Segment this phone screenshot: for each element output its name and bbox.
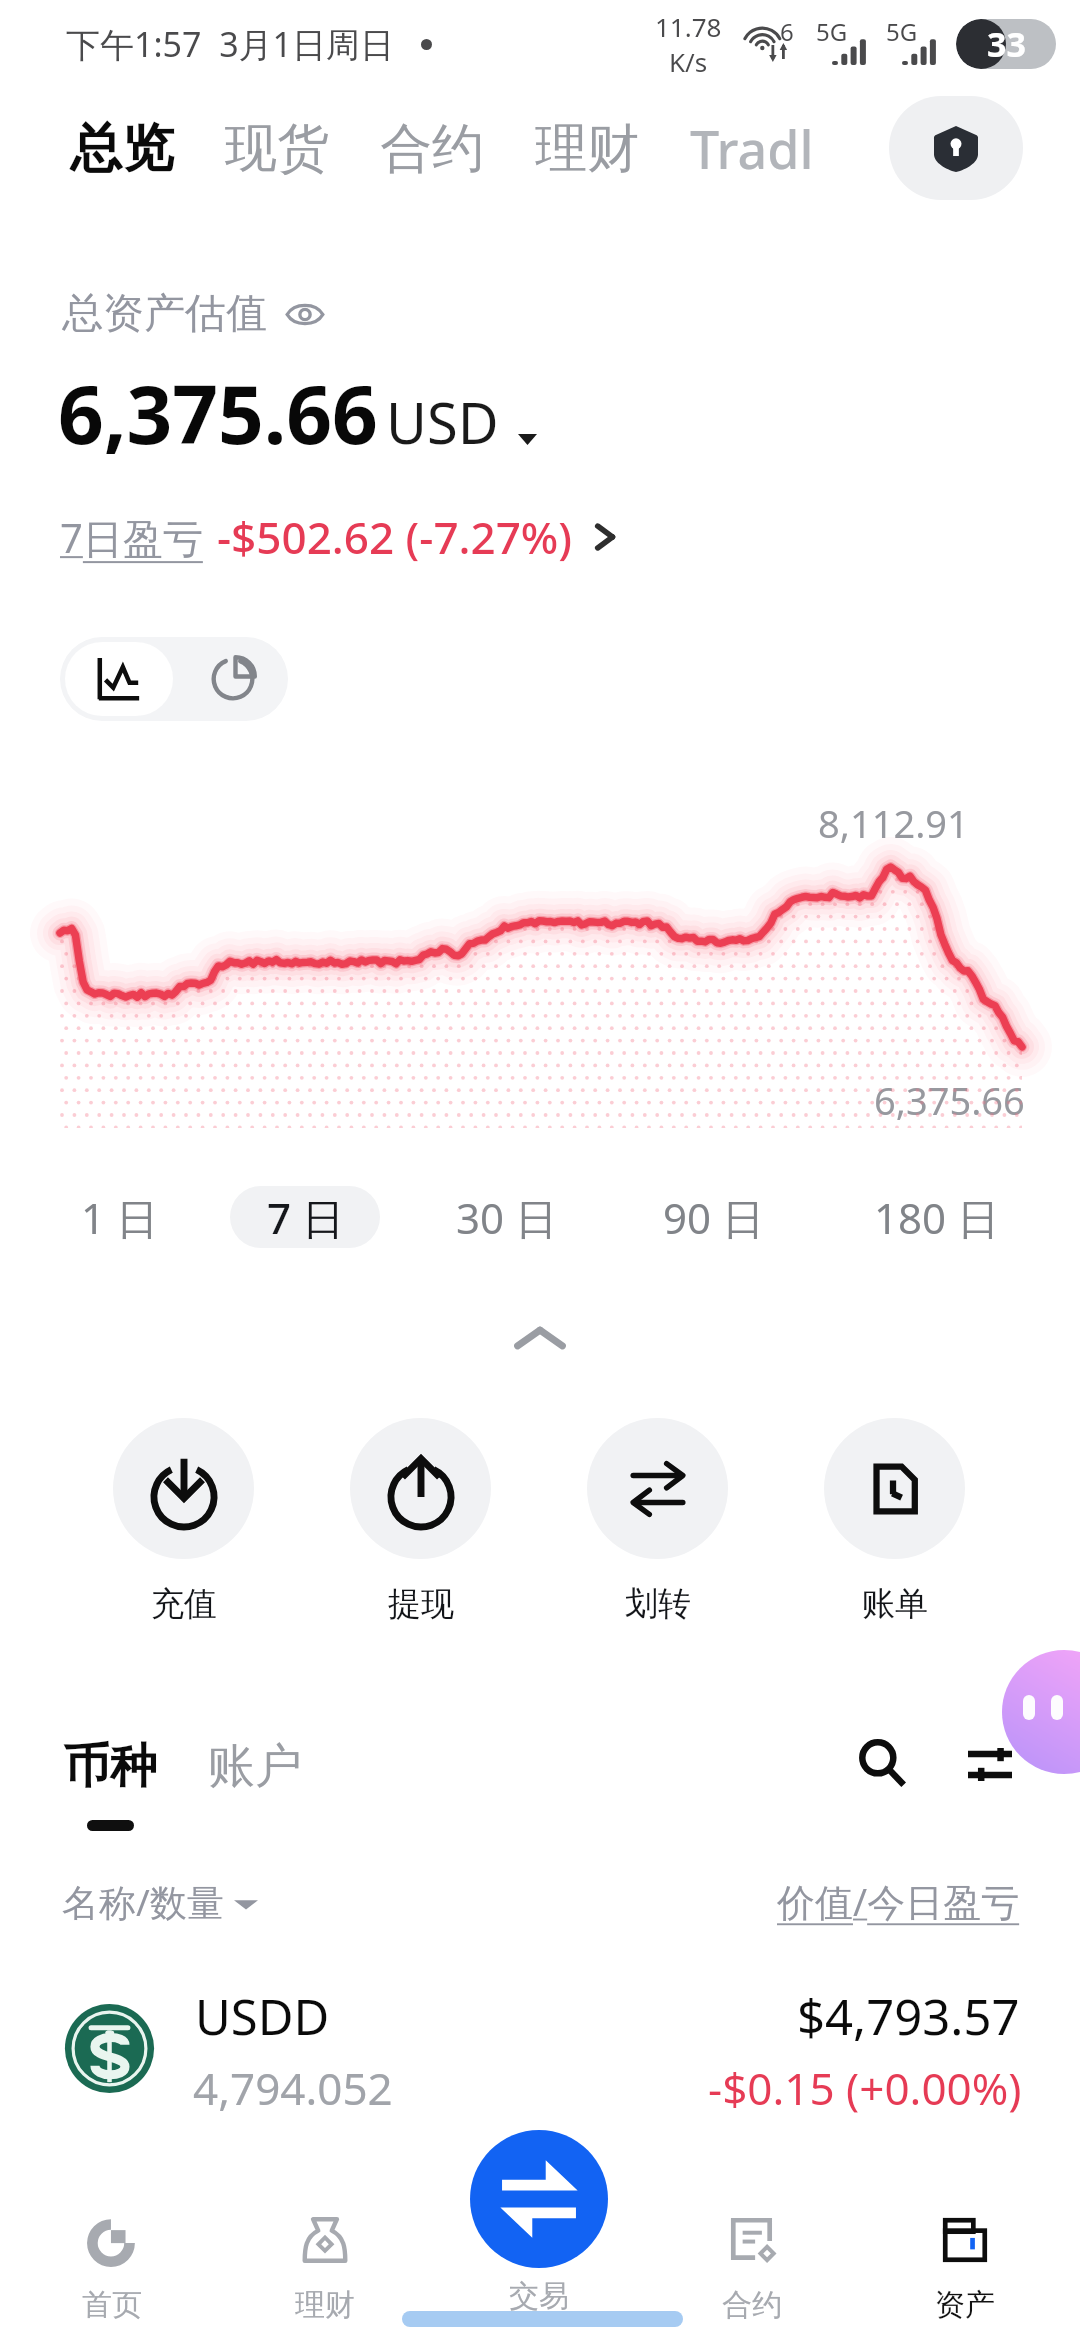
staticText: 名称/数量 [62,1876,224,1927]
staticText: 5G [816,15,848,48]
button[interactable]: 1 日 [44,1186,194,1248]
staticText: 提现 [388,1583,454,1625]
button[interactable]: 现货 [225,116,329,182]
staticText: 1 日 [81,1189,158,1246]
button[interactable]: 理财 [535,116,639,182]
button[interactable]: 合约 [682,2196,822,2340]
button[interactable]: Pie chart [178,637,288,721]
staticText: 总资产估值 [62,288,267,340]
staticText: USD [386,384,499,460]
button[interactable]: 价值/今日盈亏 [777,1875,1020,1927]
button[interactable]: 7 日 [230,1186,380,1248]
staticText: 7日盈亏 [60,510,203,565]
button[interactable]: 总资产估值 [62,288,324,340]
staticText: 首页 [82,2286,142,2324]
button[interactable]: 充值 [113,1418,254,1625]
button[interactable]: Trade [449,2130,629,2325]
button[interactable]: Trade [470,2130,608,2268]
staticText: 11.78 [655,9,722,44]
staticText: 合约 [722,2286,782,2324]
staticText: 90 日 [663,1189,764,1246]
staticText: 6,375.66 [58,358,378,467]
button[interactable]: 90 日 [638,1186,788,1248]
staticText: K/s [669,44,708,79]
staticText: 账单 [862,1583,928,1625]
button[interactable]: Tradl [690,113,814,184]
staticText: 划转 [625,1583,691,1625]
staticText: 充值 [151,1583,217,1625]
staticText: 下午1:57 3月1日周日 [66,21,395,67]
button[interactable]: 账户 [208,1737,302,1796]
button[interactable]: 180 日 [861,1186,1011,1248]
button[interactable]: 名称/数量 [62,1876,258,1927]
staticText: 33 [987,21,1026,67]
button[interactable]: 30 日 [431,1186,581,1248]
button[interactable]: 合约 [380,116,484,182]
button[interactable]: 总览 [70,116,174,182]
button[interactable]: Security [889,96,1023,200]
button[interactable]: 提现 [350,1418,491,1625]
button[interactable]: Collapse [512,1320,568,1356]
staticText: -$0.15 (+0.00%) [708,2058,1022,2118]
button[interactable]: 账单 [824,1418,965,1625]
button[interactable]: 资产 [895,2196,1035,2340]
staticText: 资产 [935,2286,995,2324]
button[interactable]: 7日盈亏 [60,507,619,567]
staticText: 6 [780,15,794,48]
staticText: 7 日 [267,1189,344,1246]
button[interactable]: Filter [958,1737,1022,1791]
button[interactable]: Customer service [1002,1650,1080,1774]
staticText: 币种 [63,1737,157,1796]
button[interactable]: 理财 [255,2196,395,2340]
button[interactable]: USDD [0,1983,1080,2113]
staticText: 180 日 [874,1189,999,1246]
button[interactable]: Search [847,1728,917,1798]
staticText: 8,112.91 [818,797,969,849]
staticText: 30 日 [456,1189,557,1246]
button[interactable]: Line chart [65,642,173,716]
button[interactable]: 首页 [42,2196,182,2340]
staticText: USDD [195,1983,330,2050]
staticText: -$502.62 (-7.27%) [217,507,573,567]
staticText: 6,375.66 [874,1074,1025,1126]
button[interactable]: 划转 [587,1418,728,1625]
staticText: 4,794.052 [193,2058,393,2118]
staticText: 交易 [509,2277,569,2315]
staticText: 5G [886,15,918,48]
staticText: 理财 [295,2286,355,2324]
button[interactable]: 币种 [63,1737,157,1831]
staticText: $4,793.57 [797,1983,1020,2050]
